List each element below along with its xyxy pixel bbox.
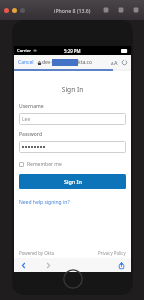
button[interactable]: Close (4, 8, 9, 13)
button[interactable]: Minimize (12, 8, 17, 13)
staticText: Sign In (14, 85, 131, 94)
staticText: Need help signing in? (19, 199, 70, 206)
staticText: A (114, 59, 118, 66)
staticText: Privacy Policy (98, 250, 126, 256)
button[interactable]: Need help signing in? (19, 199, 70, 206)
button[interactable]: Reload (121, 59, 128, 66)
staticText: Sign In (64, 178, 82, 185)
button[interactable]: Back (19, 261, 28, 270)
staticText: kta.co (78, 59, 93, 66)
button[interactable]: Remember me (19, 161, 62, 168)
button[interactable]: Home (118, 7, 124, 13)
staticText: dev- (42, 59, 52, 66)
staticText: iPhone 8 (13.6) (54, 7, 91, 14)
button[interactable]: Screenshot (103, 7, 109, 13)
staticText: Username (19, 103, 44, 110)
button[interactable]: Sign In (19, 174, 126, 189)
staticText: A (111, 61, 114, 66)
staticText: Password (19, 131, 42, 138)
button[interactable]: Share (117, 261, 126, 270)
button[interactable]: Home (63, 269, 83, 289)
staticText: 5:29 PM (64, 48, 81, 54)
staticText: Powered by Okta (19, 250, 55, 256)
button[interactable] (19, 141, 126, 153)
button[interactable]: Text size (110, 59, 119, 66)
staticText: Remember me (27, 161, 62, 168)
button[interactable]: Privacy Policy (98, 250, 126, 256)
button[interactable]: Forward (44, 261, 53, 270)
button[interactable]: Cancel (17, 57, 35, 68)
staticText: Lee (22, 116, 31, 123)
button[interactable]: Lee (19, 113, 126, 125)
staticText: Cancel (18, 59, 34, 66)
button[interactable]: Zoom (20, 8, 25, 13)
staticText: Carrier (17, 48, 31, 54)
button[interactable]: dev- (42, 59, 110, 66)
button[interactable]: Rotate (133, 7, 139, 13)
